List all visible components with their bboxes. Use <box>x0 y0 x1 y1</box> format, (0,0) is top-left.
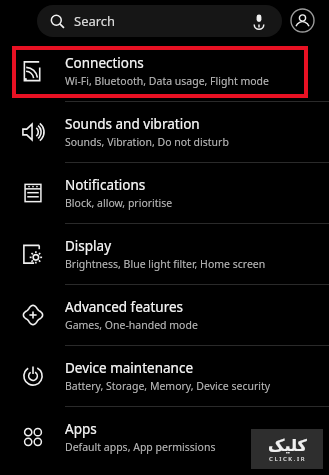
staticText: Sounds, Vibration, Do not disturb <box>65 135 229 149</box>
staticText: Brightness, Blue light filter, Home scre… <box>65 257 266 271</box>
staticText: Games, One-handed mode <box>65 318 198 332</box>
button[interactable]: Voice search <box>249 11 269 31</box>
staticText: Wi-Fi, Bluetooth, Data usage, Flight mod… <box>65 74 270 88</box>
button[interactable]: Search <box>37 5 282 37</box>
staticText: Apps <box>65 420 97 438</box>
staticText: Notifications <box>65 176 146 194</box>
staticText: Default apps, App permissions <box>65 440 216 454</box>
staticText: Search <box>74 12 116 30</box>
staticText: Connections <box>65 54 144 72</box>
button[interactable]: Display <box>0 224 329 284</box>
staticText: Battery, Storage, Memory, Device securit… <box>65 379 271 393</box>
button[interactable]: Notifications <box>0 163 329 223</box>
staticText: کلیک <box>268 436 307 455</box>
button[interactable]: Sounds and vibration <box>0 102 329 162</box>
button[interactable]: Device maintenance <box>0 346 329 406</box>
staticText: Display <box>65 237 112 255</box>
staticText: Advanced features <box>65 298 184 316</box>
staticText: CLICK.IR <box>269 455 307 463</box>
button[interactable]: Connections <box>0 41 329 101</box>
staticText: Sounds and vibration <box>65 115 200 133</box>
button[interactable]: Apps <box>0 407 329 467</box>
button[interactable]: Account <box>289 7 316 34</box>
staticText: Device maintenance <box>65 359 194 377</box>
staticText: Block, allow, prioritise <box>65 196 173 210</box>
button[interactable]: Advanced features <box>0 285 329 345</box>
